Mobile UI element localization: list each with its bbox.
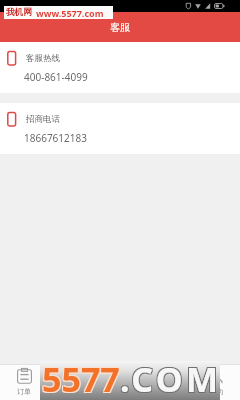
staticText: .COM — [121, 357, 223, 396]
staticText: 18667612183 — [24, 131, 87, 145]
button[interactable]: 我的 — [192, 365, 240, 400]
button[interactable]: 首页 — [144, 365, 192, 400]
staticText: 5577 — [41, 355, 119, 394]
staticText: 5577 — [43, 355, 121, 394]
staticText: 400-861-4099 — [24, 70, 88, 84]
staticText: 5577 — [42, 356, 120, 395]
staticText: .COM — [120, 356, 222, 395]
staticText: 我机网 — [6, 7, 32, 18]
staticText: 客服热线 — [26, 53, 60, 64]
button[interactable]: 客服 — [0, 12, 240, 42]
staticText: 分类 — [65, 387, 79, 396]
staticText: 招商电话 — [26, 114, 60, 125]
staticText: 购物车 — [110, 387, 131, 396]
staticText: 首页 — [161, 387, 175, 396]
staticText: .COM — [121, 355, 223, 394]
staticText: .COM — [119, 355, 221, 394]
button[interactable]: 分类 — [48, 365, 96, 400]
staticText: 5577 — [41, 357, 119, 396]
button[interactable]: 购物车 — [96, 365, 144, 400]
button[interactable]: 客服热线 — [0, 42, 240, 93]
staticText: 5577 — [43, 357, 121, 396]
staticText: 客服 — [110, 21, 130, 34]
staticText: www.5577.com — [36, 7, 104, 19]
staticText: .COM — [119, 357, 221, 396]
button[interactable]: 订单 — [0, 365, 48, 400]
staticText: 订单 — [17, 387, 31, 396]
staticText: 我的 — [209, 387, 223, 396]
button[interactable]: 招商电话 — [0, 103, 240, 154]
